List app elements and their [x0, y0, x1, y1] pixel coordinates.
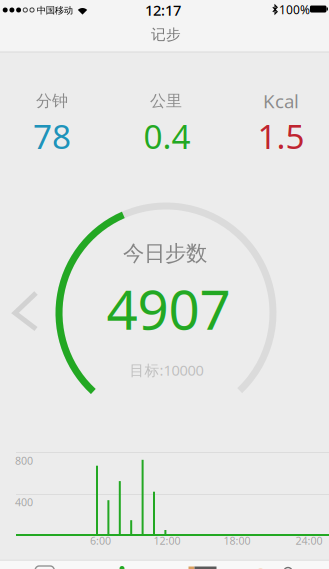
staticText: 24:00	[295, 533, 322, 548]
staticText: 目标:10000	[129, 360, 203, 380]
staticText: 78	[33, 114, 71, 158]
staticText: Kcal	[263, 89, 299, 113]
button[interactable]	[82, 560, 164, 569]
button[interactable]	[0, 560, 82, 569]
button[interactable]	[247, 560, 329, 569]
button[interactable]	[165, 560, 247, 569]
button[interactable]	[10, 289, 40, 333]
staticText: 中国移动	[37, 5, 73, 16]
staticText: 公里	[150, 91, 182, 111]
staticText: 今日步数	[123, 240, 207, 267]
staticText: 100%	[279, 1, 310, 17]
staticText: 18:00	[223, 533, 250, 548]
staticText: 分钟	[36, 91, 68, 111]
staticText: 0.4	[143, 114, 190, 158]
staticText: 800	[15, 453, 33, 468]
staticText: 12:00	[153, 533, 180, 548]
staticText: 6:00	[90, 533, 111, 548]
staticText: 4907	[106, 272, 230, 345]
staticText: 400	[15, 495, 33, 509]
staticText: 12:17	[145, 0, 181, 20]
staticText: 1.5	[257, 114, 304, 158]
staticText: 记步	[151, 25, 181, 43]
